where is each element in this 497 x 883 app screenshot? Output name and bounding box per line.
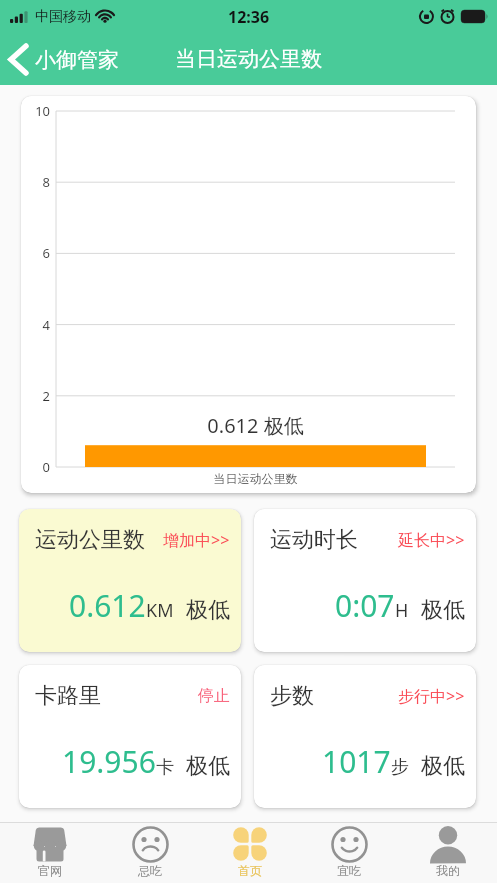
button[interactable]: 官网 [0,823,100,883]
staticText: 增加中>> [163,529,230,551]
button[interactable]: 运动时长 [254,509,476,652]
staticText: 12:36 [228,6,270,28]
staticText: 4 [27,316,50,334]
staticText: 卡 [156,756,174,779]
staticText: 极低 [421,596,465,624]
button[interactable]: 运动公里数 [19,509,241,652]
staticText: 运动公里数 [35,526,145,554]
staticText: 小御管家 [35,47,119,73]
staticText: 19.956 [62,741,156,782]
staticText: 0 [27,458,50,476]
button[interactable]: 忌吃 [100,823,200,883]
staticText: 10 [27,102,50,120]
staticText: 步 [391,756,409,779]
button[interactable]: 卡路里 [19,665,241,808]
staticText: 极低 [186,596,230,624]
staticText: 卡路里 [35,682,101,710]
staticText: 当日运动公里数 [56,471,455,486]
staticText: 宜吃 [337,863,361,878]
staticText: 中国移动 [35,8,91,26]
staticText: 运动时长 [270,526,358,554]
staticText: 我的 [436,863,460,878]
staticText: 当日运动公里数 [175,46,322,72]
button[interactable]: 首页 [200,823,299,883]
staticText: 6 [27,244,50,262]
staticText: 1017 [322,741,391,782]
button[interactable]: 步数 [254,665,476,808]
button[interactable]: 小御管家 [0,44,119,75]
staticText: 8 [27,173,50,191]
staticText: 延长中>> [398,529,465,551]
staticText: 0.612 [69,585,146,626]
staticText: 极低 [421,752,465,780]
button[interactable]: 宜吃 [299,823,398,883]
staticText: 停止 [198,686,230,706]
staticText: KM [146,598,174,623]
button[interactable]: 我的 [398,823,497,883]
staticText: 步行中>> [398,685,465,707]
staticText: 0.612 极低 [56,412,455,439]
staticText: 首页 [238,863,262,878]
staticText: 步数 [270,682,314,710]
staticText: 极低 [186,752,230,780]
staticText: 0:07 [335,585,395,626]
staticText: 2 [27,387,50,405]
staticText: 忌吃 [138,863,162,878]
staticText: 官网 [38,863,62,878]
staticText: H [395,598,409,623]
